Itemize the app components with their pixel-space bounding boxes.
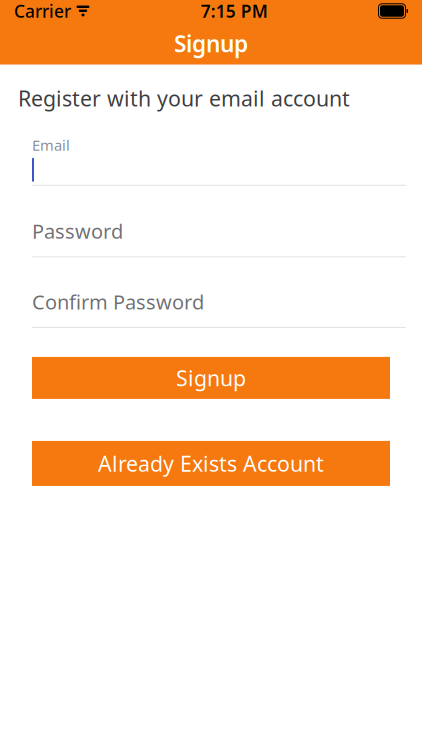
staticText: Signup: [176, 364, 246, 392]
staticText: Carrier: [14, 0, 71, 22]
staticText: Register with your email account: [18, 84, 350, 112]
staticText: Signup: [174, 28, 248, 58]
button[interactable]: Signup: [32, 357, 390, 399]
staticText: Email: [32, 135, 70, 155]
staticText: Password: [32, 218, 123, 244]
staticText: 7:15 PM: [201, 0, 268, 22]
staticText: Already Exists Account: [98, 449, 324, 478]
button[interactable]: Already Exists Account: [32, 441, 390, 486]
staticText: Confirm Password: [32, 288, 204, 315]
